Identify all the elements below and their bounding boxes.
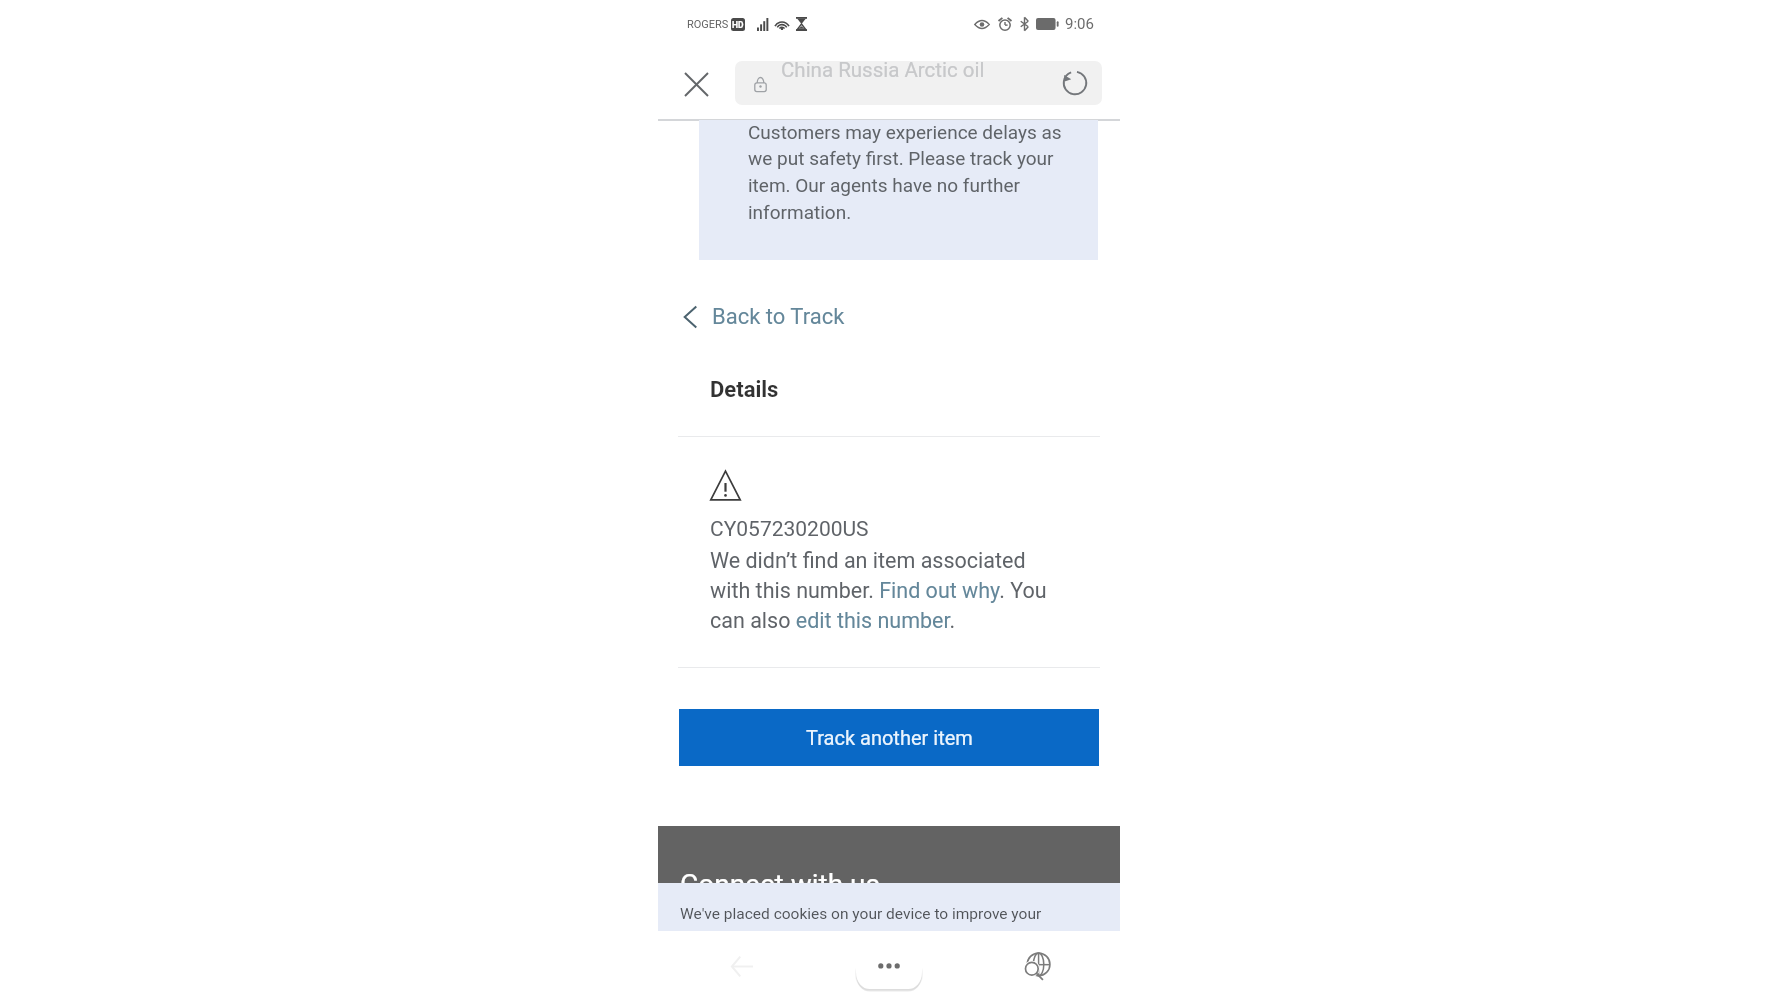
- staticText: Connect with us: [680, 868, 880, 883]
- staticText: We've placed cookies on your device to i…: [680, 905, 1042, 923]
- button[interactable]: Back to Track: [683, 298, 845, 336]
- staticText: Customers may experience delays as we pu…: [748, 121, 1080, 224]
- staticText: China Russia Arctic oil: [781, 61, 985, 82]
- button[interactable]: Search the web: [1014, 942, 1060, 988]
- staticText: Details: [710, 377, 779, 403]
- staticText: HD: [732, 20, 744, 30]
- staticText: ROGERS: [687, 18, 729, 31]
- staticText: Track another item: [806, 726, 973, 749]
- button[interactable]: Close: [672, 60, 720, 108]
- button[interactable]: Connect with us: [658, 826, 1120, 883]
- button[interactable]: More options: [856, 957, 922, 990]
- staticText: We didn’t find an item associated with t…: [710, 548, 1058, 633]
- staticText: CY057230200US: [710, 517, 869, 542]
- button[interactable]: Address bar: [735, 61, 1102, 105]
- staticText: Back to Track: [712, 304, 845, 330]
- button[interactable]: We didn’t find an item associated with t…: [710, 548, 1058, 633]
- button[interactable]: Reload page: [1055, 63, 1095, 103]
- button[interactable]: Track another item: [679, 709, 1099, 766]
- staticText: 9:06: [1065, 15, 1094, 33]
